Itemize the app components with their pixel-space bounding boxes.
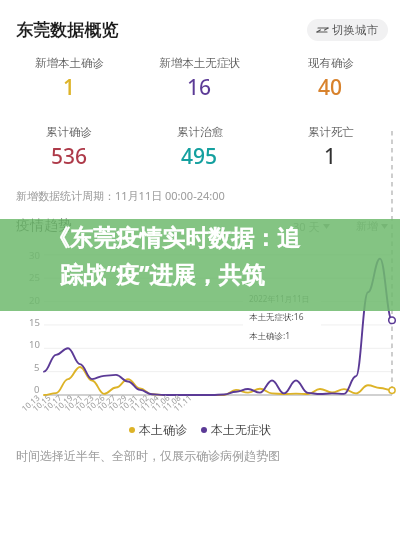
button[interactable]: 新增本土无症状	[134, 56, 265, 102]
staticText: 0	[34, 383, 40, 396]
staticText: 10	[29, 338, 40, 351]
staticText: 累计确诊	[46, 125, 92, 139]
other: 切换城市	[317, 26, 328, 34]
staticText: 《东莞疫情实时数据：追	[47, 224, 300, 253]
button[interactable]: 30 天	[293, 219, 330, 234]
staticText: 10.29	[106, 391, 129, 413]
staticText: 10.19	[52, 391, 75, 413]
button[interactable]: 累计确诊	[4, 125, 134, 171]
staticText: 11.06	[149, 391, 172, 413]
staticText: 10.26	[84, 391, 107, 413]
button[interactable]: 切换城市	[307, 19, 388, 41]
staticText: 本土无症状	[211, 422, 271, 437]
staticText: 10.17	[41, 391, 64, 413]
staticText: 5	[34, 361, 40, 374]
staticText: 东莞数据概览	[16, 20, 118, 41]
staticText: 16	[187, 73, 212, 102]
staticText: 新增本土确诊	[35, 56, 104, 70]
staticText: 2022年11月11日	[249, 293, 310, 304]
button[interactable]: 本土无症状	[201, 422, 271, 437]
staticText: 25	[29, 271, 40, 284]
button[interactable]: 新增本土确诊	[4, 56, 134, 102]
staticText: 11.11	[171, 391, 194, 413]
staticText: 30 天	[293, 219, 320, 234]
staticText: 11.02	[128, 391, 151, 413]
button[interactable]: 新增	[356, 219, 388, 233]
staticText: 10.21	[62, 391, 85, 413]
staticText: 本土确诊:1	[249, 330, 291, 342]
staticText: 现有确诊	[308, 56, 354, 70]
staticText: 10.23	[73, 391, 96, 413]
button[interactable]: 累计治愈	[134, 125, 265, 171]
staticText: 11.04	[138, 391, 161, 413]
staticText: 新增本土无症状	[159, 56, 240, 70]
staticText: 20	[29, 294, 40, 307]
staticText: 新增数据统计周期：11月11日 00:00-24:00	[16, 188, 225, 203]
staticText: 时间选择近半年、全部时，仅展示确诊病例趋势图	[16, 448, 280, 463]
staticText: 1	[63, 73, 76, 102]
staticText: 30	[29, 249, 40, 262]
staticText: 10.15	[30, 391, 53, 413]
staticText: 新增	[356, 219, 378, 233]
button[interactable]: 本土确诊	[129, 422, 187, 437]
button[interactable]: 疫情趋势	[16, 217, 72, 235]
staticText: 切换城市	[332, 23, 378, 37]
staticText: 累计治愈	[177, 125, 223, 139]
staticText: 15	[29, 316, 40, 329]
staticText: 累计死亡	[308, 125, 354, 139]
staticText: 10.31	[117, 391, 140, 413]
staticText: 1	[324, 142, 337, 171]
button[interactable]: 现有确诊	[265, 56, 396, 102]
staticText: 本土确诊	[139, 422, 187, 437]
staticText: 10.13	[19, 391, 42, 413]
staticText: 10.27	[95, 391, 118, 413]
staticText: 踪战“疫”进展，共筑	[60, 258, 265, 289]
staticText: 40	[318, 73, 343, 102]
button[interactable]: 累计死亡	[265, 125, 396, 171]
staticText: 本土无症状:16	[249, 311, 304, 323]
staticText: 536	[51, 142, 88, 171]
staticText: 495	[181, 142, 218, 171]
staticText: 11.08	[160, 391, 183, 413]
